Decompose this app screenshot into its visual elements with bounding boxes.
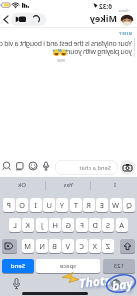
button[interactable]: Send bbox=[2, 259, 34, 273]
button[interactable]: H bbox=[49, 218, 61, 232]
staticText: J bbox=[40, 220, 43, 230]
button[interactable]: O bbox=[16, 198, 28, 212]
button[interactable] bbox=[111, 279, 121, 289]
staticText: O bbox=[19, 200, 25, 210]
staticText: MIKEY bbox=[119, 31, 132, 36]
button[interactable]: I bbox=[92, 178, 137, 192]
staticText: S bbox=[105, 220, 110, 230]
button[interactable] bbox=[2, 239, 17, 253]
staticText: M bbox=[24, 241, 31, 251]
staticText: Thots bbox=[78, 271, 112, 291]
staticText: X bbox=[92, 241, 97, 251]
button[interactable]: M bbox=[22, 239, 34, 253]
staticText: T bbox=[73, 200, 78, 210]
button[interactable]: U bbox=[43, 198, 55, 212]
staticText: Yes bbox=[63, 181, 73, 189]
button[interactable]: A bbox=[116, 218, 128, 232]
staticText: you playing with yourself bbox=[57, 47, 132, 57]
staticText: Mikey bbox=[89, 12, 117, 24]
button[interactable]: N bbox=[36, 239, 48, 253]
staticText: < Kanoe bbox=[118, 9, 130, 13]
staticText: N bbox=[39, 241, 45, 251]
button[interactable]: R bbox=[83, 198, 95, 212]
staticText: P bbox=[6, 200, 11, 210]
button[interactable]: J bbox=[36, 218, 48, 232]
staticText: Ok bbox=[18, 181, 26, 189]
button[interactable]: K bbox=[22, 218, 34, 232]
button[interactable] bbox=[3, 15, 9, 24]
button[interactable] bbox=[12, 278, 21, 290]
button[interactable]: G bbox=[62, 218, 74, 232]
button[interactable]: B bbox=[49, 239, 61, 253]
staticText: L bbox=[13, 220, 17, 230]
button[interactable]: 123 bbox=[103, 259, 135, 273]
button[interactable]: P bbox=[3, 198, 15, 212]
staticText: U bbox=[46, 200, 52, 210]
button[interactable]: Z bbox=[102, 239, 114, 253]
staticText: R bbox=[86, 200, 91, 210]
staticText: Send bbox=[10, 262, 25, 270]
button[interactable]: L bbox=[9, 218, 21, 232]
button[interactable]: W bbox=[110, 198, 122, 212]
staticText: D bbox=[92, 220, 98, 230]
button[interactable]: X bbox=[89, 239, 101, 253]
staticText: W bbox=[112, 200, 119, 210]
staticText: space bbox=[59, 262, 76, 270]
button[interactable] bbox=[2, 161, 50, 173]
staticText: F bbox=[80, 220, 84, 230]
button[interactable] bbox=[11, 13, 46, 26]
staticText: Y bbox=[59, 200, 64, 210]
staticText: E bbox=[99, 200, 104, 210]
staticText: G bbox=[65, 220, 71, 230]
button[interactable]: Q bbox=[123, 198, 135, 212]
button[interactable]: V bbox=[62, 239, 74, 253]
button[interactable]: Yes bbox=[46, 178, 91, 192]
staticText: 6:32 bbox=[99, 2, 112, 11]
staticText: H bbox=[52, 220, 58, 230]
staticText: Send a chat bbox=[79, 164, 111, 172]
button[interactable]: I bbox=[30, 198, 42, 212]
button[interactable] bbox=[120, 160, 135, 175]
staticText: K bbox=[25, 220, 30, 230]
staticText: C bbox=[79, 241, 84, 251]
staticText: 123 bbox=[113, 262, 124, 270]
staticText: I bbox=[113, 181, 116, 189]
button[interactable]: Send a chat bbox=[55, 160, 118, 175]
button[interactable] bbox=[120, 239, 135, 253]
button[interactable]: space bbox=[36, 259, 100, 273]
staticText: A bbox=[119, 220, 124, 230]
button[interactable]: C bbox=[76, 239, 88, 253]
button[interactable]: D bbox=[89, 218, 101, 232]
button[interactable]: F bbox=[76, 218, 88, 232]
button[interactable]: T bbox=[70, 198, 82, 212]
staticText: B bbox=[52, 241, 57, 251]
staticText: Your onlyfans is the best and i bought a… bbox=[0, 39, 132, 49]
button[interactable]: Y bbox=[56, 198, 68, 212]
staticText: Q bbox=[126, 200, 132, 210]
staticText: I bbox=[34, 200, 37, 210]
staticText: V bbox=[65, 241, 70, 251]
button[interactable] bbox=[120, 12, 134, 26]
button[interactable]: E bbox=[96, 198, 108, 212]
staticText: Z bbox=[105, 241, 110, 251]
button[interactable]: Ok bbox=[0, 178, 45, 192]
staticText: bay bbox=[111, 275, 134, 293]
button[interactable]: S bbox=[102, 218, 114, 232]
